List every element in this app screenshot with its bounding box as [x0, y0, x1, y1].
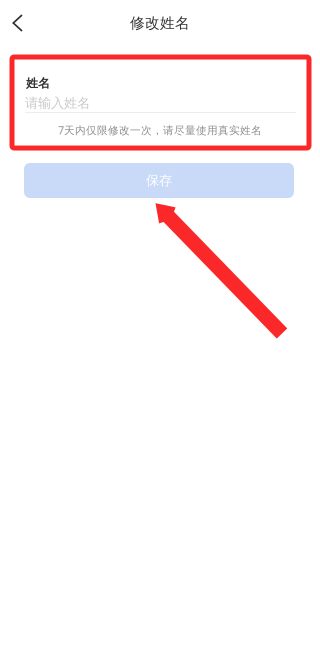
staticText: 姓名 [26, 76, 50, 91]
staticText: 请输入姓名 [25, 95, 90, 111]
button[interactable]: Back [0, 1, 36, 45]
staticText: 保存 [146, 172, 172, 189]
staticText: 修改姓名 [130, 14, 190, 32]
button[interactable]: 保存 [24, 163, 294, 198]
staticText: 7天内仅限修改一次，请尽量使用真实姓名 [58, 123, 262, 137]
button[interactable]: 请输入姓名 [25, 93, 296, 113]
